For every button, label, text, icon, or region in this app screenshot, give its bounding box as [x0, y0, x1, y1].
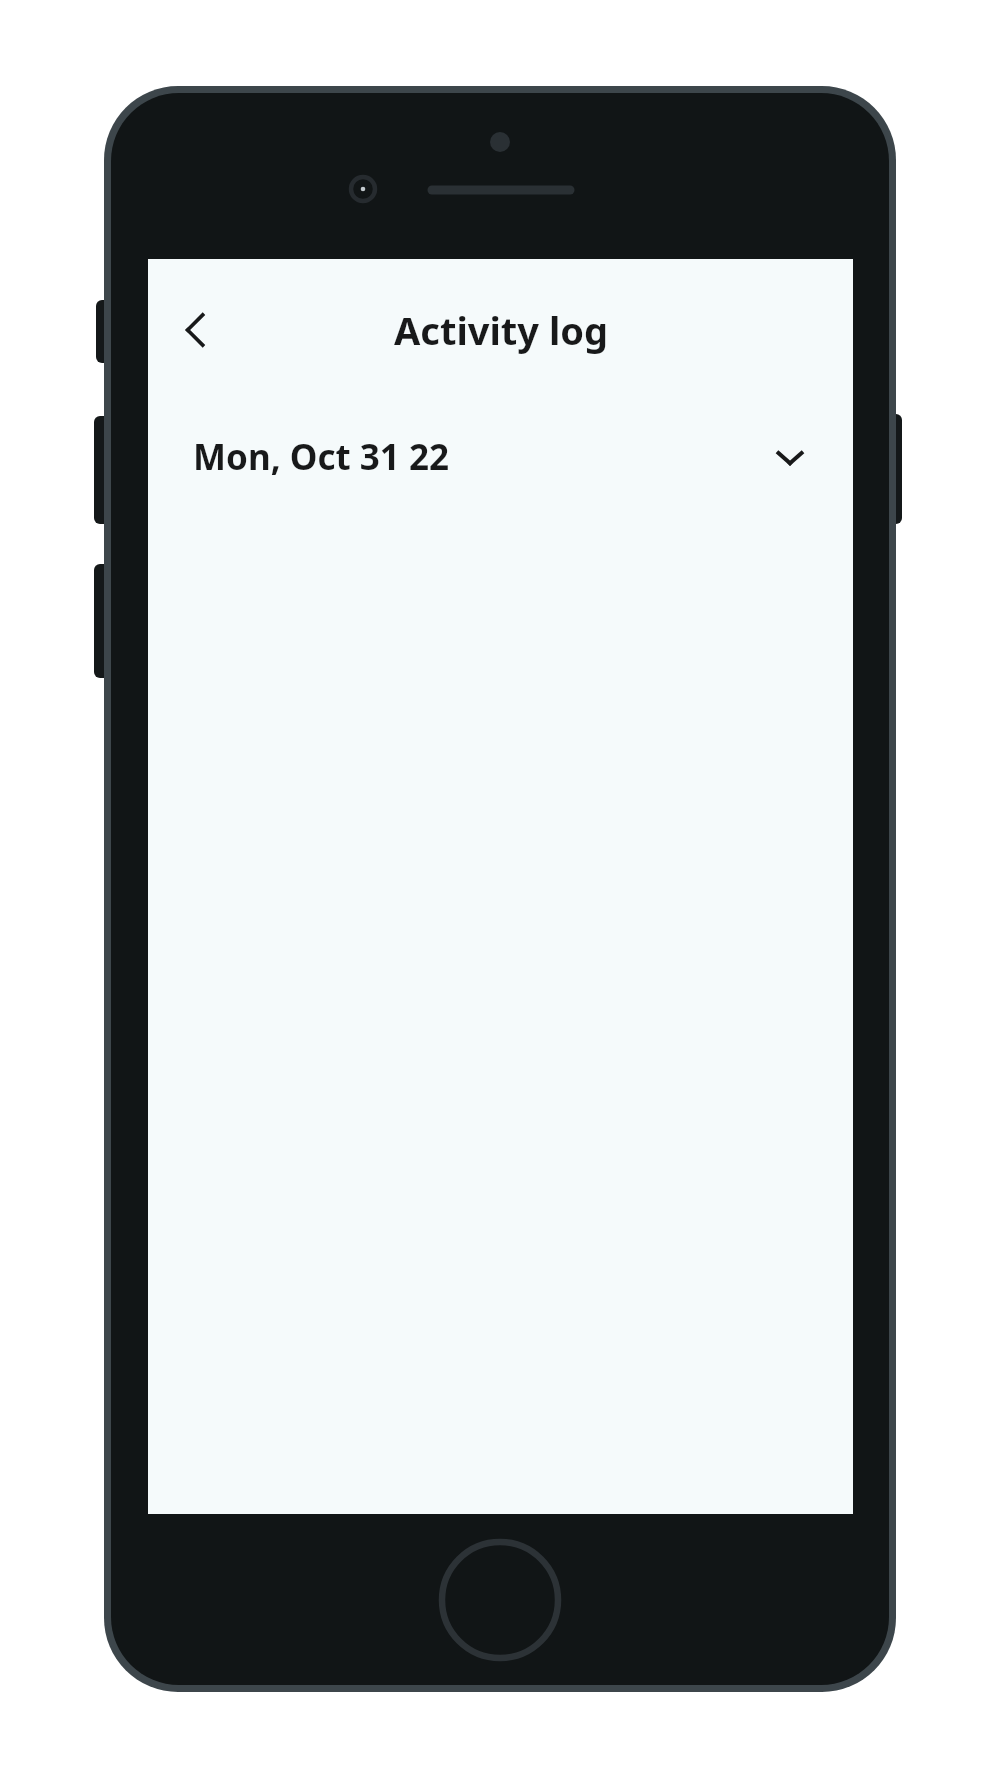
staticText: Activity log	[394, 304, 608, 356]
staticText: Mon, Oct 31 22	[193, 433, 449, 481]
button[interactable]: Back	[154, 288, 238, 372]
button[interactable]: Mon, Oct 31 22	[148, 401, 853, 513]
